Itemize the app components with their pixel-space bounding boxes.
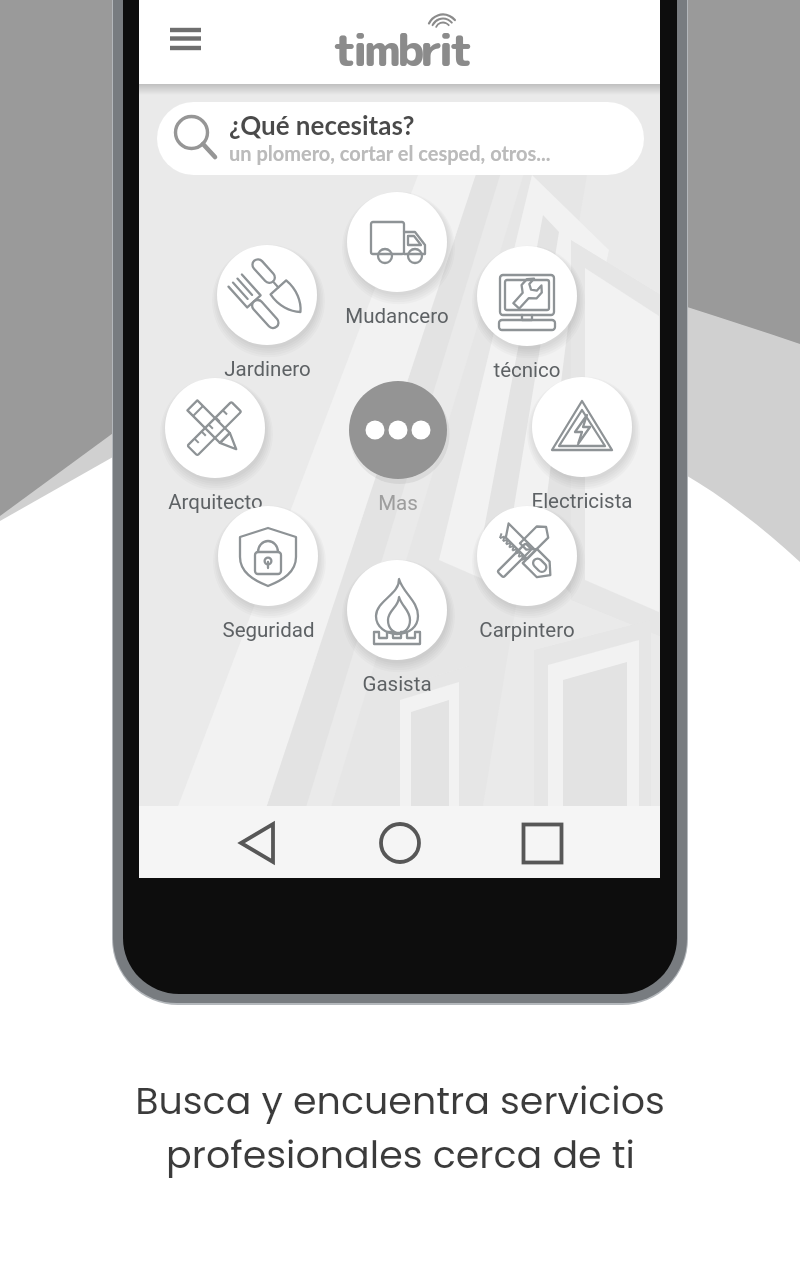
staticText: técnico	[493, 358, 561, 382]
button[interactable]: Back	[197, 806, 317, 878]
staticText: profesionales cerca de ti	[166, 1128, 635, 1181]
button[interactable]	[477, 506, 577, 606]
button[interactable]: Menu	[160, 14, 212, 66]
staticText: Seguridad	[222, 618, 315, 642]
button[interactable]	[217, 245, 317, 345]
button[interactable]	[165, 378, 265, 478]
staticText: Carpintero	[479, 618, 575, 642]
staticText: Arquitecto	[168, 490, 263, 514]
button[interactable]	[477, 246, 577, 346]
button[interactable]	[347, 560, 447, 660]
staticText: Jardinero	[224, 357, 311, 381]
button[interactable]: Home	[340, 806, 460, 878]
button[interactable]	[532, 377, 632, 477]
button[interactable]: ¿Qué necesitas?	[157, 102, 644, 175]
staticText: timbrit	[333, 19, 469, 80]
button[interactable]	[347, 192, 447, 292]
staticText: Busca y encuentra servicios	[135, 1074, 665, 1127]
button[interactable]: Recent apps	[481, 806, 601, 878]
button[interactable]	[349, 381, 447, 479]
staticText: un plomero, cortar el cesped, otros...	[229, 141, 551, 165]
staticText: Mas	[378, 491, 418, 515]
staticText: Electricista	[531, 489, 633, 513]
staticText: Mudancero	[345, 304, 449, 328]
staticText: Gasista	[362, 672, 432, 696]
button[interactable]	[218, 506, 318, 606]
staticText: ¿Qué necesitas?	[229, 109, 415, 140]
